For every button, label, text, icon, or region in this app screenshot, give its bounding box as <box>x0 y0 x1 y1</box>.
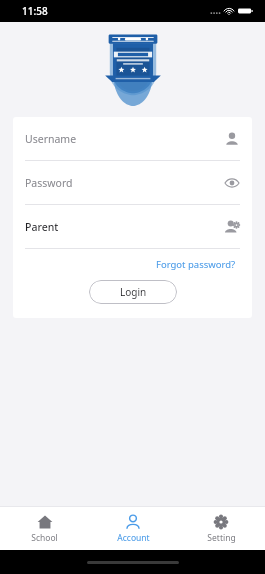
button[interactable]: Parent <box>13 205 252 248</box>
staticText: School <box>31 532 58 544</box>
button[interactable]: School <box>0 507 89 550</box>
staticText: Login <box>120 285 147 299</box>
button[interactable]: Password <box>13 161 252 204</box>
staticText: Password <box>25 176 224 190</box>
staticText: Account <box>117 532 150 544</box>
staticText: Forgot password? <box>156 258 236 271</box>
staticText: Parent <box>25 220 224 234</box>
staticText: Setting <box>207 532 236 544</box>
staticText: Username <box>25 132 224 146</box>
button[interactable]: Username <box>13 117 252 160</box>
button[interactable]: Setting <box>177 507 265 550</box>
button[interactable]: Account <box>89 507 177 550</box>
button[interactable]: Forgot password? <box>140 249 252 280</box>
staticText: 11:58 <box>22 4 48 18</box>
button[interactable]: Login <box>89 280 177 304</box>
